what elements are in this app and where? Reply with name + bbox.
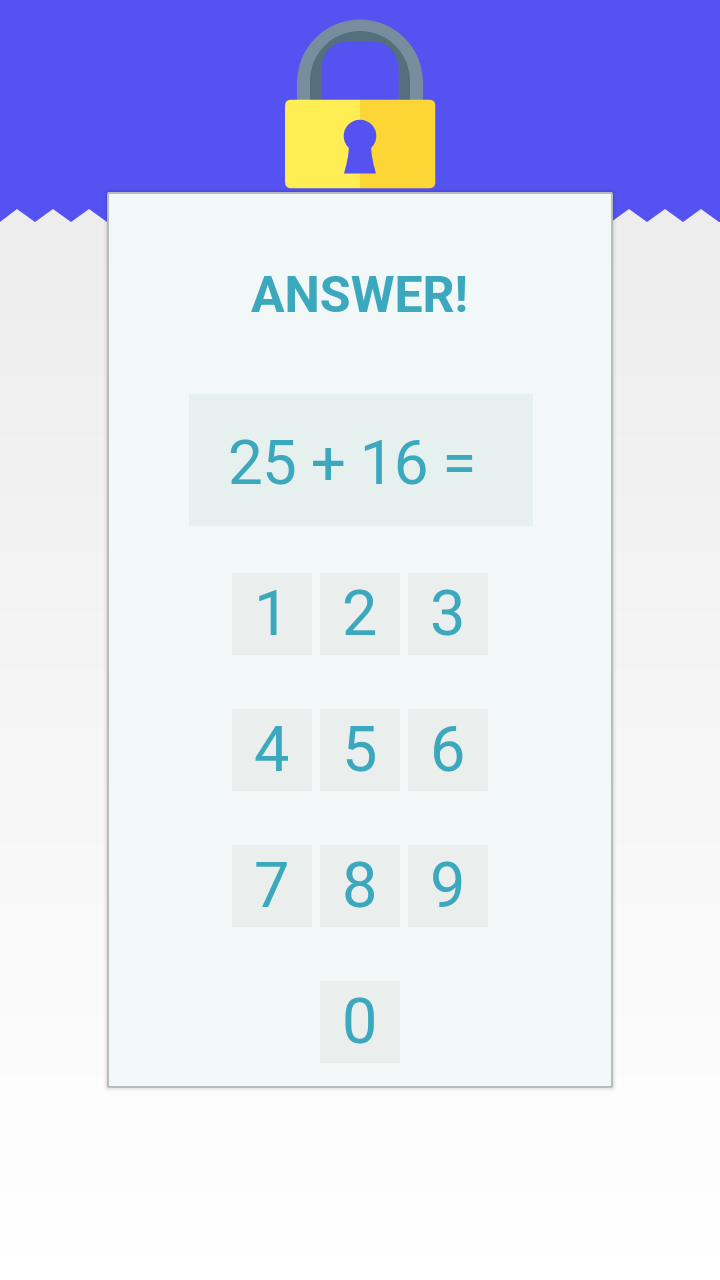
button[interactable]: 1 xyxy=(232,573,312,655)
staticText: 9 xyxy=(430,849,466,923)
staticText: 6 xyxy=(430,713,466,787)
button[interactable]: 2 xyxy=(320,573,400,655)
other: Locked xyxy=(0,0,720,200)
button[interactable]: 6 xyxy=(408,709,488,791)
button[interactable]: 0 xyxy=(320,981,400,1063)
staticText: 0 xyxy=(342,985,378,1059)
button[interactable]: 9 xyxy=(408,845,488,927)
staticText: 3 xyxy=(430,577,466,651)
staticText: 5 xyxy=(342,713,378,787)
staticText: 8 xyxy=(342,849,378,923)
staticText: ANSWER! xyxy=(251,266,469,325)
button[interactable]: 3 xyxy=(408,573,488,655)
button[interactable]: 8 xyxy=(320,845,400,927)
staticText: 2 xyxy=(342,577,378,651)
button[interactable]: 5 xyxy=(320,709,400,791)
button[interactable]: 7 xyxy=(232,845,312,927)
staticText: 4 xyxy=(254,713,290,787)
staticText: 1 xyxy=(254,577,290,651)
button[interactable]: 4 xyxy=(232,709,312,791)
staticText: 7 xyxy=(254,849,290,923)
staticText: 25 + 16 = xyxy=(228,426,476,499)
